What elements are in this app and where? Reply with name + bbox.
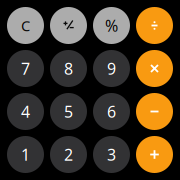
button[interactable]: C xyxy=(7,7,44,44)
staticText: 8 xyxy=(64,58,73,79)
button[interactable]: 2 xyxy=(50,136,87,173)
button[interactable]: 8 xyxy=(50,50,87,87)
staticText: 5 xyxy=(64,101,73,122)
staticText: 7 xyxy=(21,58,30,79)
button[interactable]: % xyxy=(93,7,130,44)
button[interactable]: Toggle sign xyxy=(50,7,87,44)
staticText: 4 xyxy=(21,101,30,122)
staticText: 3 xyxy=(107,144,116,165)
staticText: C xyxy=(21,16,30,35)
button[interactable]: Multiply xyxy=(136,50,173,87)
button[interactable]: 5 xyxy=(50,93,87,130)
staticText: 6 xyxy=(107,101,116,122)
button[interactable]: Divide xyxy=(136,7,173,44)
button[interactable]: Add xyxy=(136,136,173,173)
button[interactable]: Subtract xyxy=(136,93,173,130)
button[interactable]: 7 xyxy=(7,50,44,87)
staticText: % xyxy=(105,15,118,36)
button[interactable]: 4 xyxy=(7,93,44,130)
button[interactable]: 9 xyxy=(93,50,130,87)
button[interactable]: 3 xyxy=(93,136,130,173)
staticText: 1 xyxy=(21,144,30,165)
staticText: 9 xyxy=(107,58,116,79)
button[interactable]: 6 xyxy=(93,93,130,130)
button[interactable]: 1 xyxy=(7,136,44,173)
staticText: 2 xyxy=(64,144,73,165)
